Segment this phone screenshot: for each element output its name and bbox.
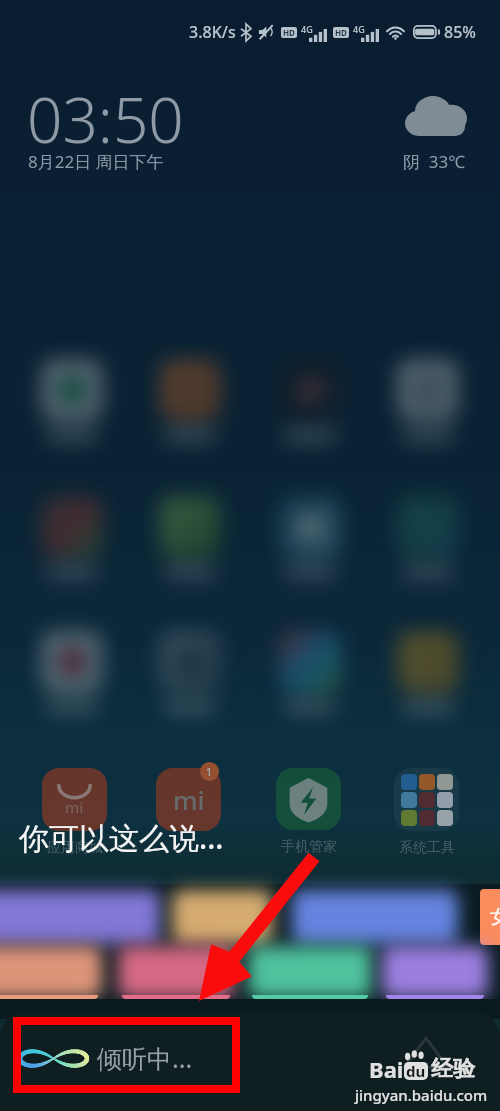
button[interactable] [364,326,492,454]
button[interactable] [228,926,392,1018]
staticText: 4G [301,23,313,35]
button[interactable]: mi [42,768,107,857]
button[interactable] [8,598,136,726]
button[interactable] [126,463,254,591]
button[interactable] [246,598,374,726]
button[interactable]: mi [156,762,221,858]
button[interactable] [0,870,180,964]
button[interactable]: 手机管家 [276,768,341,856]
button[interactable] [364,598,492,726]
staticText: HD [283,27,295,38]
staticText: 应用商城 [47,839,103,857]
staticText: 系统工具 [399,839,455,857]
staticText: HD [335,27,347,38]
staticText: 03:50 [27,77,184,161]
staticText: mi [65,797,84,817]
staticText: 手机管家 [281,838,337,856]
button[interactable] [126,598,254,726]
staticText: 阴 33℃ [403,150,466,173]
staticText: 1 [206,764,213,779]
staticText: Bai [369,1054,404,1084]
button[interactable] [152,870,292,964]
staticText: jingyan.baidu.com [355,1085,488,1105]
button[interactable] [0,926,122,1018]
staticText: 3.8K/s [189,21,236,43]
staticText: 经验 [431,1055,475,1083]
button[interactable]: 女 [480,889,500,945]
staticText: 你可以这么说... [19,817,224,858]
button[interactable] [362,926,500,1018]
button[interactable] [272,870,478,964]
button[interactable]: 系统工具 [394,768,459,857]
staticText: 85% [444,21,476,43]
button[interactable] [246,463,374,591]
staticText: 倾听中... [97,1041,193,1075]
button[interactable] [126,326,254,454]
button[interactable]: 倾听中... [20,1027,245,1089]
button[interactable] [8,326,136,454]
staticText: 8月22日 周日下午 [28,150,164,173]
button[interactable] [246,326,374,454]
staticText: mi [173,782,205,817]
button[interactable] [98,926,254,1018]
staticText: du [406,1061,426,1081]
button[interactable] [8,463,136,591]
button[interactable] [364,463,492,591]
staticText: 女 [490,905,500,929]
staticText: 4G [353,23,365,35]
